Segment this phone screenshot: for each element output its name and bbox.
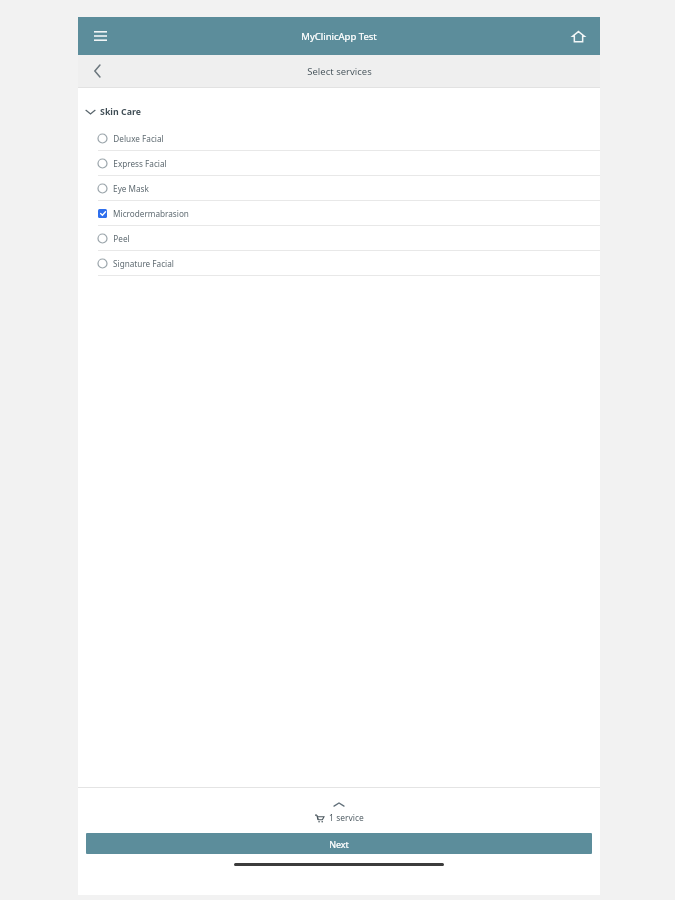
staticText: Microdermabrasion bbox=[113, 208, 189, 219]
button[interactable]: Peel bbox=[78, 226, 600, 250]
button[interactable]: Eye Mask bbox=[78, 176, 600, 200]
staticText: Express Facial bbox=[113, 158, 167, 169]
button[interactable]: Microdermabrasion bbox=[78, 201, 600, 225]
button[interactable]: Signature Facial bbox=[78, 251, 600, 275]
staticText: MyClinicApp Test bbox=[301, 30, 377, 43]
staticText: 1 service bbox=[329, 812, 364, 824]
button[interactable]: Skin Care bbox=[78, 104, 600, 122]
staticText: Peel bbox=[113, 233, 130, 244]
staticText: Signature Facial bbox=[113, 258, 174, 269]
staticText: Eye Mask bbox=[113, 183, 149, 194]
staticText: Next bbox=[329, 838, 349, 850]
button[interactable]: Expand cart, 1 service bbox=[78, 802, 600, 824]
button[interactable]: Back bbox=[82, 56, 112, 86]
staticText: Deluxe Facial bbox=[113, 133, 164, 144]
button[interactable]: Home bbox=[562, 20, 594, 52]
button[interactable]: Next bbox=[86, 833, 592, 854]
staticText: Select services bbox=[307, 65, 372, 78]
staticText: Skin Care bbox=[100, 106, 141, 118]
button[interactable]: Express Facial bbox=[78, 151, 600, 175]
button[interactable]: Deluxe Facial bbox=[78, 126, 600, 150]
button[interactable]: Open navigation menu bbox=[84, 20, 116, 52]
